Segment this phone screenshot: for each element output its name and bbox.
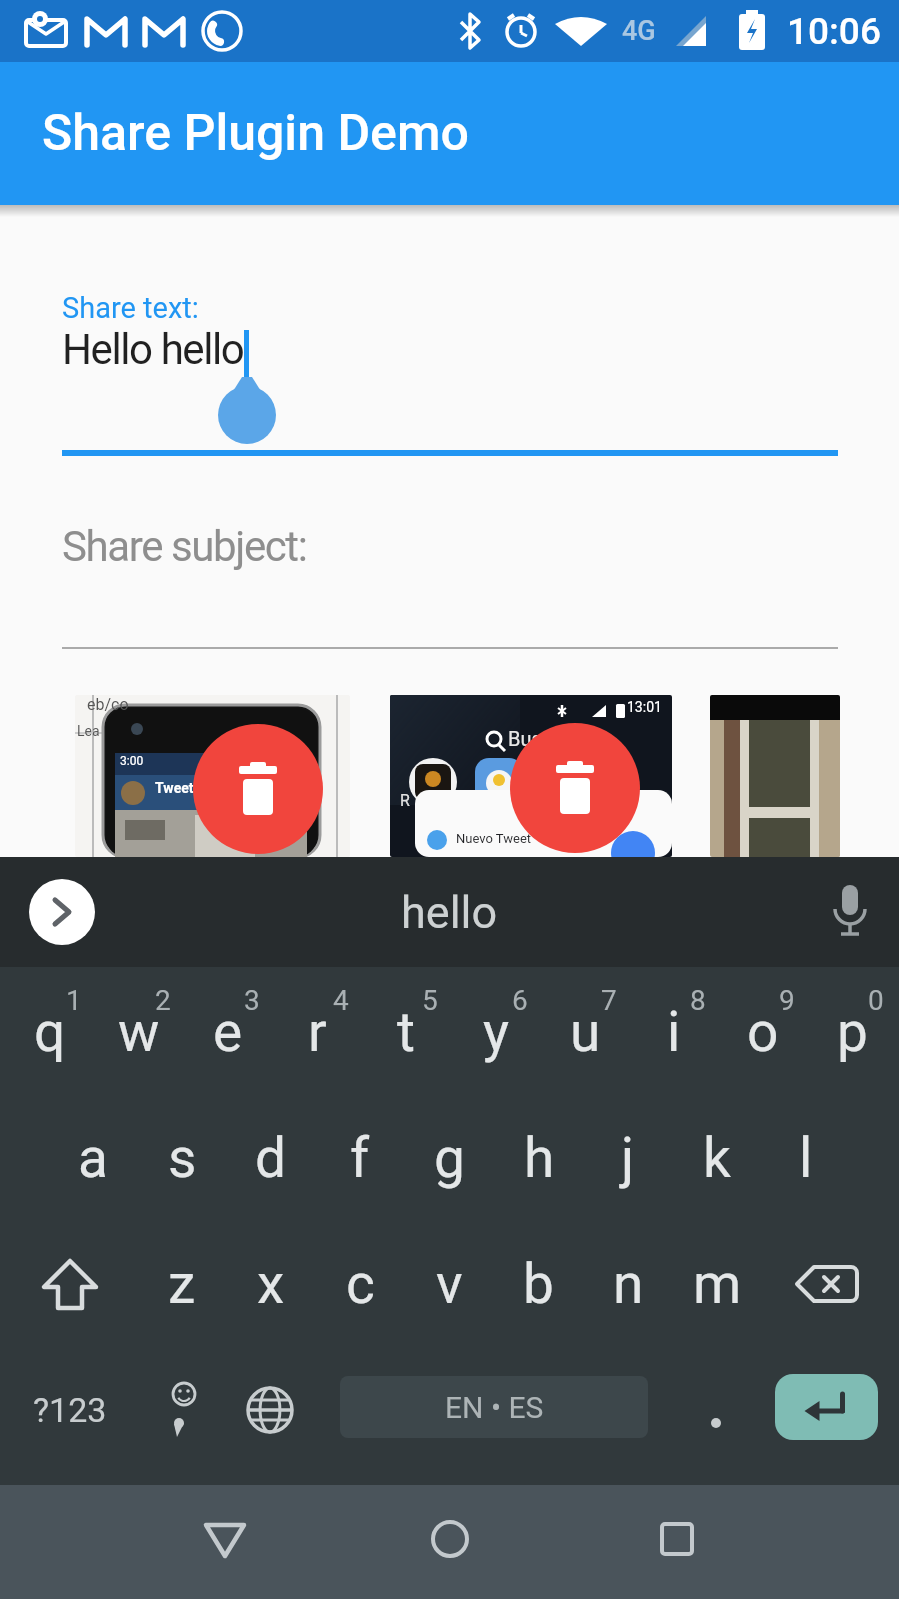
staticText: Lea: [77, 723, 100, 739]
button[interactable]: [193, 724, 323, 854]
button[interactable]: [775, 1374, 878, 1440]
staticText: f: [350, 1126, 370, 1190]
staticText: s: [168, 1126, 197, 1190]
button[interactable]: b: [494, 1224, 582, 1344]
button[interactable]: 13:01: [390, 695, 672, 857]
button[interactable]: eb/co: [75, 695, 350, 857]
button[interactable]: [777, 1224, 877, 1344]
staticText: 3: [244, 984, 260, 1017]
staticText: hello: [401, 886, 498, 939]
staticText: r: [308, 1000, 327, 1064]
staticText: y: [483, 1000, 510, 1064]
button[interactable]: [62, 318, 838, 456]
staticText: 3:00: [120, 754, 144, 768]
staticText: k: [703, 1126, 731, 1190]
staticText: h: [524, 1126, 555, 1190]
staticText: l: [799, 1126, 813, 1190]
button[interactable]: t: [361, 972, 451, 1092]
button[interactable]: m: [673, 1224, 761, 1344]
button[interactable]: p: [807, 972, 897, 1092]
staticText: w: [118, 1000, 160, 1064]
button[interactable]: n: [584, 1224, 672, 1344]
staticText: Share Plugin Demo: [42, 104, 469, 163]
staticText: ?123: [33, 1390, 107, 1430]
staticText: 9: [779, 984, 795, 1017]
button[interactable]: [820, 880, 880, 942]
button[interactable]: [20, 1224, 120, 1344]
staticText: e: [213, 1000, 243, 1064]
button[interactable]: [185, 1504, 265, 1574]
staticText: g: [434, 1126, 465, 1190]
staticText: i: [667, 1000, 681, 1064]
button[interactable]: Share subject:: [62, 522, 307, 571]
staticText: Bus: [508, 727, 542, 750]
button[interactable]: a: [49, 1098, 137, 1218]
staticText: eb/co: [87, 695, 129, 714]
button[interactable]: hello: [300, 857, 599, 967]
staticText: a: [78, 1126, 108, 1190]
button[interactable]: c: [316, 1224, 404, 1344]
staticText: 10:06: [787, 10, 881, 53]
staticText: d: [255, 1126, 287, 1190]
button[interactable]: s: [138, 1098, 226, 1218]
button[interactable]: q: [5, 972, 95, 1092]
staticText: 8: [690, 984, 706, 1017]
button[interactable]: [410, 1504, 490, 1574]
staticText: n: [613, 1252, 644, 1316]
staticText: Nuevo Tweet: [456, 831, 532, 846]
button[interactable]: [637, 1504, 717, 1574]
staticText: q: [34, 1000, 66, 1064]
button[interactable]: [230, 1350, 310, 1470]
button[interactable]: [29, 879, 95, 945]
staticText: b: [523, 1252, 554, 1316]
staticText: p: [837, 1000, 868, 1064]
staticText: u: [570, 1000, 601, 1064]
button[interactable]: i: [629, 972, 719, 1092]
staticText: t: [397, 1000, 415, 1064]
staticText: Tweetline: [155, 780, 217, 796]
staticText: x: [257, 1252, 285, 1316]
button[interactable]: j: [584, 1098, 672, 1218]
button[interactable]: [710, 695, 840, 857]
staticText: v: [436, 1252, 463, 1316]
button[interactable]: EN • ES: [340, 1376, 648, 1438]
staticText: 7: [601, 984, 617, 1017]
staticText: 5: [422, 984, 438, 1017]
button[interactable]: d: [227, 1098, 315, 1218]
staticText: 6: [512, 984, 528, 1017]
staticText: R: [400, 791, 410, 810]
button[interactable]: [142, 1350, 222, 1470]
button[interactable]: v: [405, 1224, 493, 1344]
button[interactable]: r: [272, 972, 362, 1092]
button[interactable]: g: [405, 1098, 493, 1218]
staticText: c: [346, 1252, 375, 1316]
staticText: z: [168, 1252, 196, 1316]
staticText: j: [621, 1126, 635, 1190]
staticText: 4: [333, 984, 349, 1017]
staticText: EN • ES: [445, 1390, 544, 1425]
button[interactable]: y: [451, 972, 541, 1092]
button[interactable]: [62, 510, 838, 649]
staticText: 2: [155, 984, 171, 1017]
staticText: 0: [868, 984, 884, 1017]
button[interactable]: k: [673, 1098, 761, 1218]
staticText: 4G: [622, 15, 656, 47]
staticText: Share text:: [62, 291, 199, 325]
button[interactable]: Hello hello: [62, 325, 244, 374]
button[interactable]: ?123: [20, 1350, 120, 1470]
staticText: o: [747, 1000, 779, 1064]
staticText: 13:01: [627, 699, 662, 715]
button[interactable]: u: [540, 972, 630, 1092]
button[interactable]: o: [718, 972, 808, 1092]
staticText: 1: [66, 984, 82, 1017]
button[interactable]: x: [227, 1224, 315, 1344]
button[interactable]: w: [94, 972, 184, 1092]
button[interactable]: [510, 723, 640, 853]
button[interactable]: [686, 1350, 746, 1470]
button[interactable]: f: [316, 1098, 404, 1218]
staticText: m: [693, 1252, 742, 1316]
button[interactable]: l: [762, 1098, 850, 1218]
button[interactable]: e: [183, 972, 273, 1092]
button[interactable]: h: [495, 1098, 583, 1218]
button[interactable]: z: [138, 1224, 226, 1344]
